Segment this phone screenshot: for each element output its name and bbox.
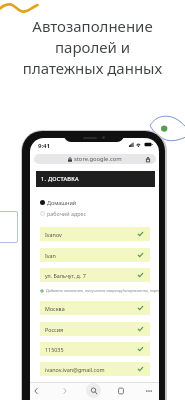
staticText: Москва — [45, 305, 65, 312]
staticText: store.google.com — [74, 155, 122, 163]
staticText: 1. ДОСТАВКА — [41, 175, 79, 183]
staticText: Ivanov — [45, 231, 62, 238]
staticText: 115035 — [45, 346, 64, 353]
staticText: Россия — [45, 326, 64, 333]
button[interactable]: Ivanov — [40, 227, 150, 241]
staticText: рабочий адрес — [47, 210, 87, 217]
staticText: 9:41 — [38, 142, 50, 150]
button[interactable]: Москва — [40, 301, 150, 315]
button[interactable]: store.google.com — [34, 154, 156, 164]
button[interactable]: Back — [30, 383, 43, 398]
button[interactable]: Россия — [40, 322, 150, 336]
staticText: Добавить компанию, получателя квартиру/а… — [46, 288, 159, 293]
button[interactable]: ivanov.ivan@gmail.com — [40, 362, 150, 376]
staticText: Автозаполнение паролей и платежных данны… — [0, 16, 185, 79]
button[interactable]: Домашний — [40, 199, 77, 206]
staticText: ivanov.ivan@gmail.com — [45, 366, 105, 373]
button[interactable]: 1. ДОСТАВКА — [36, 171, 155, 187]
button[interactable]: Tabs — [113, 383, 128, 398]
button[interactable]: Search — [86, 383, 101, 398]
other: Share — [146, 157, 150, 162]
staticText: Ivan — [45, 252, 56, 259]
button[interactable]: ул. Бальчуг, д. 7 — [40, 268, 150, 282]
button[interactable]: рабочий адрес — [40, 210, 87, 217]
button[interactable]: Forward — [57, 383, 72, 398]
button[interactable]: 115035 — [40, 342, 150, 356]
staticText: ул. Бальчуг, д. 7 — [45, 272, 86, 279]
button[interactable]: More — [141, 383, 156, 398]
staticText: Домашний — [47, 199, 77, 206]
button[interactable]: Ivan — [40, 248, 150, 262]
